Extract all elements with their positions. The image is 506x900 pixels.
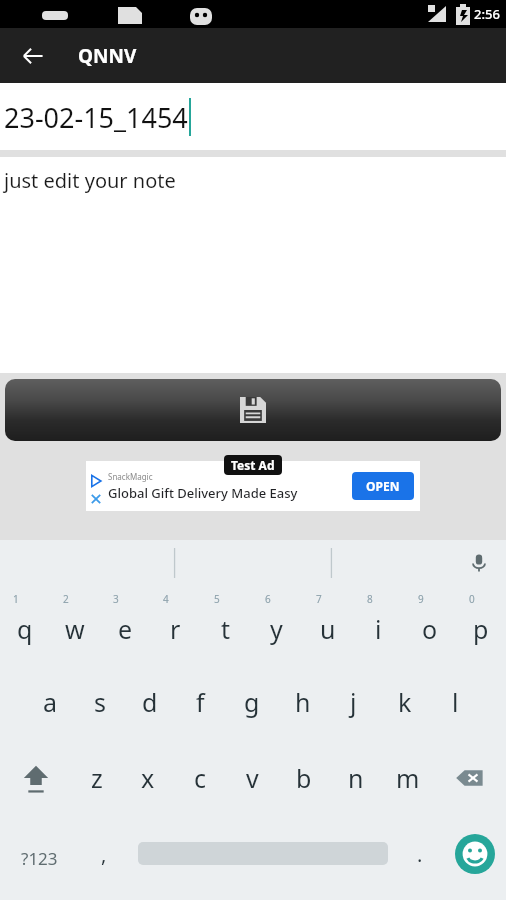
staticText: ?123 <box>21 847 58 870</box>
button[interactable]: x <box>122 740 174 816</box>
staticText: l <box>452 685 459 719</box>
staticText: Global Gift Delivery Made Easy <box>108 484 298 502</box>
button[interactable]: 1 <box>0 586 50 664</box>
button[interactable]: , <box>78 816 130 900</box>
staticText: 6 <box>265 592 271 606</box>
staticText: e <box>118 612 133 646</box>
staticText: g <box>244 685 260 719</box>
button[interactable]: 0 <box>455 586 506 664</box>
staticText: r <box>170 612 181 646</box>
button[interactable]: 3 <box>100 586 150 664</box>
staticText: OPEN <box>366 478 400 494</box>
staticText: j <box>350 685 357 719</box>
button[interactable]: Emoji <box>444 816 506 900</box>
staticText: p <box>473 612 489 646</box>
staticText: m <box>396 761 420 795</box>
button[interactable]: n <box>330 740 382 816</box>
staticText: b <box>296 761 312 795</box>
button[interactable]: just edit your note <box>0 157 506 373</box>
staticText: SnackMagic <box>108 471 153 482</box>
staticText: . <box>417 841 423 868</box>
staticText: w <box>65 612 85 646</box>
button[interactable]: l <box>430 664 481 740</box>
button[interactable]: k <box>379 664 430 740</box>
staticText: 3 <box>113 592 119 606</box>
staticText: y <box>270 612 283 646</box>
staticText: 2:56 <box>474 5 500 23</box>
button[interactable]: Shift <box>0 740 71 816</box>
button[interactable]: z <box>71 740 122 816</box>
button[interactable]: Voice input <box>460 544 498 582</box>
button[interactable]: Save note <box>5 379 501 441</box>
button[interactable]: g <box>226 664 277 740</box>
staticText: just edit your note <box>4 167 176 194</box>
staticText: n <box>348 761 364 795</box>
button[interactable]: d <box>125 664 175 740</box>
button[interactable]: m <box>382 740 434 816</box>
button[interactable]: 8 <box>353 586 404 664</box>
staticText: h <box>295 685 311 719</box>
button[interactable]: SnackMagic <box>86 461 420 511</box>
staticText: x <box>141 761 155 795</box>
staticText: Test Ad <box>231 457 275 473</box>
button[interactable]: ?123 <box>0 816 78 900</box>
staticText: q <box>17 612 33 646</box>
staticText: d <box>142 685 158 719</box>
button[interactable]: . <box>396 816 444 900</box>
staticText: a <box>43 685 58 719</box>
staticText: 0 <box>469 592 475 606</box>
staticText: v <box>246 761 259 795</box>
button[interactable]: a <box>25 664 75 740</box>
staticText: , <box>101 841 107 868</box>
button[interactable]: 5 <box>200 586 251 664</box>
staticText: f <box>196 685 205 719</box>
staticText: i <box>375 612 382 646</box>
button[interactable]: Backspace <box>434 740 506 816</box>
button[interactable]: v <box>226 740 278 816</box>
staticText: 7 <box>316 592 322 606</box>
staticText: 8 <box>367 592 373 606</box>
button[interactable]: h <box>277 664 328 740</box>
button[interactable]: b <box>278 740 330 816</box>
staticText: 4 <box>163 592 169 606</box>
staticText: 1 <box>13 592 19 606</box>
button[interactable]: c <box>174 740 226 816</box>
button[interactable]: 7 <box>302 586 353 664</box>
staticText: u <box>320 612 336 646</box>
button[interactable]: 9 <box>404 586 455 664</box>
staticText: k <box>398 685 412 719</box>
staticText: t <box>221 612 231 646</box>
staticText: o <box>422 612 438 646</box>
button[interactable]: 2 <box>50 586 100 664</box>
staticText: 23-02-15_1454 <box>4 99 188 136</box>
staticText: z <box>91 761 103 795</box>
staticText: s <box>94 685 106 719</box>
button[interactable]: f <box>175 664 226 740</box>
button[interactable]: 4 <box>150 586 200 664</box>
button[interactable]: Space <box>130 816 396 900</box>
button[interactable]: 6 <box>251 586 302 664</box>
button[interactable]: Back <box>12 35 54 77</box>
button[interactable]: OPEN <box>352 472 414 500</box>
button[interactable]: s <box>75 664 125 740</box>
button[interactable]: 23-02-15_1454 <box>0 83 506 150</box>
staticText: 2 <box>63 592 69 606</box>
staticText: c <box>194 761 207 795</box>
staticText: 5 <box>214 592 220 606</box>
staticText: QNNV <box>78 43 137 69</box>
staticText: 9 <box>418 592 424 606</box>
button[interactable]: j <box>328 664 379 740</box>
